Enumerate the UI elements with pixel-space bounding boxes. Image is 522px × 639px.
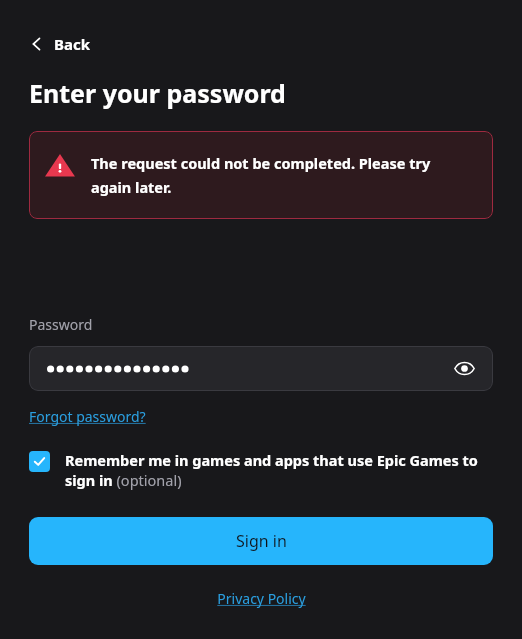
button[interactable]: Remember me in games and apps that use E… (29, 450, 493, 491)
staticText: Forgot password? (29, 407, 146, 426)
button[interactable]: Show password (448, 352, 481, 385)
button[interactable]: Show password (29, 346, 493, 391)
staticText: Privacy Policy (217, 589, 306, 608)
button[interactable]: Forgot password? (29, 407, 146, 426)
staticText: Sign in (236, 530, 287, 552)
button[interactable]: Sign in (29, 517, 493, 565)
staticText: Enter your password (29, 76, 286, 110)
button[interactable]: Privacy Policy (217, 589, 306, 608)
staticText: Password (29, 315, 93, 334)
button[interactable]: Back (22, 30, 99, 58)
staticText: Back (54, 34, 91, 54)
staticText: The request could not be completed. Plea… (91, 153, 471, 197)
staticText: Remember me in games and apps that use E… (65, 450, 493, 491)
